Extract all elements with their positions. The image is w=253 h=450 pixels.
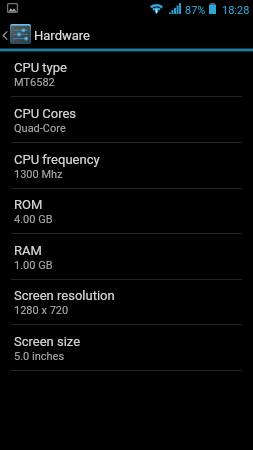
- staticText: Screen size: [14, 334, 81, 349]
- staticText: Screen resolution: [14, 288, 115, 303]
- button[interactable]: Screen size: [0, 325, 253, 371]
- staticText: CPU frequency: [14, 152, 100, 167]
- button[interactable]: Screen resolution: [0, 280, 253, 325]
- staticText: RAM: [14, 243, 42, 258]
- button[interactable]: CPU Cores: [0, 97, 253, 143]
- staticText: 4.00 GB: [14, 213, 53, 226]
- button[interactable]: RAM: [0, 234, 253, 280]
- staticText: 1.00 GB: [14, 259, 53, 272]
- staticText: 87%: [185, 4, 206, 17]
- staticText: 1300 Mhz: [14, 168, 63, 181]
- button[interactable]: CPU type: [0, 51, 253, 97]
- button[interactable]: ROM: [0, 189, 253, 234]
- staticText: MT6582: [14, 76, 55, 89]
- staticText: CPU type: [14, 60, 67, 75]
- button[interactable]: CPU frequency: [0, 143, 253, 189]
- staticText: CPU Cores: [14, 106, 77, 121]
- staticText: ROM: [14, 197, 43, 212]
- staticText: Quad-Core: [14, 122, 66, 135]
- button[interactable]: Navigate up, Hardware: [0, 19, 253, 51]
- staticText: 5.0 inches: [14, 350, 65, 363]
- staticText: 18:28: [222, 4, 250, 17]
- staticText: Hardware: [34, 28, 90, 43]
- staticText: 1280 x 720: [14, 304, 69, 317]
